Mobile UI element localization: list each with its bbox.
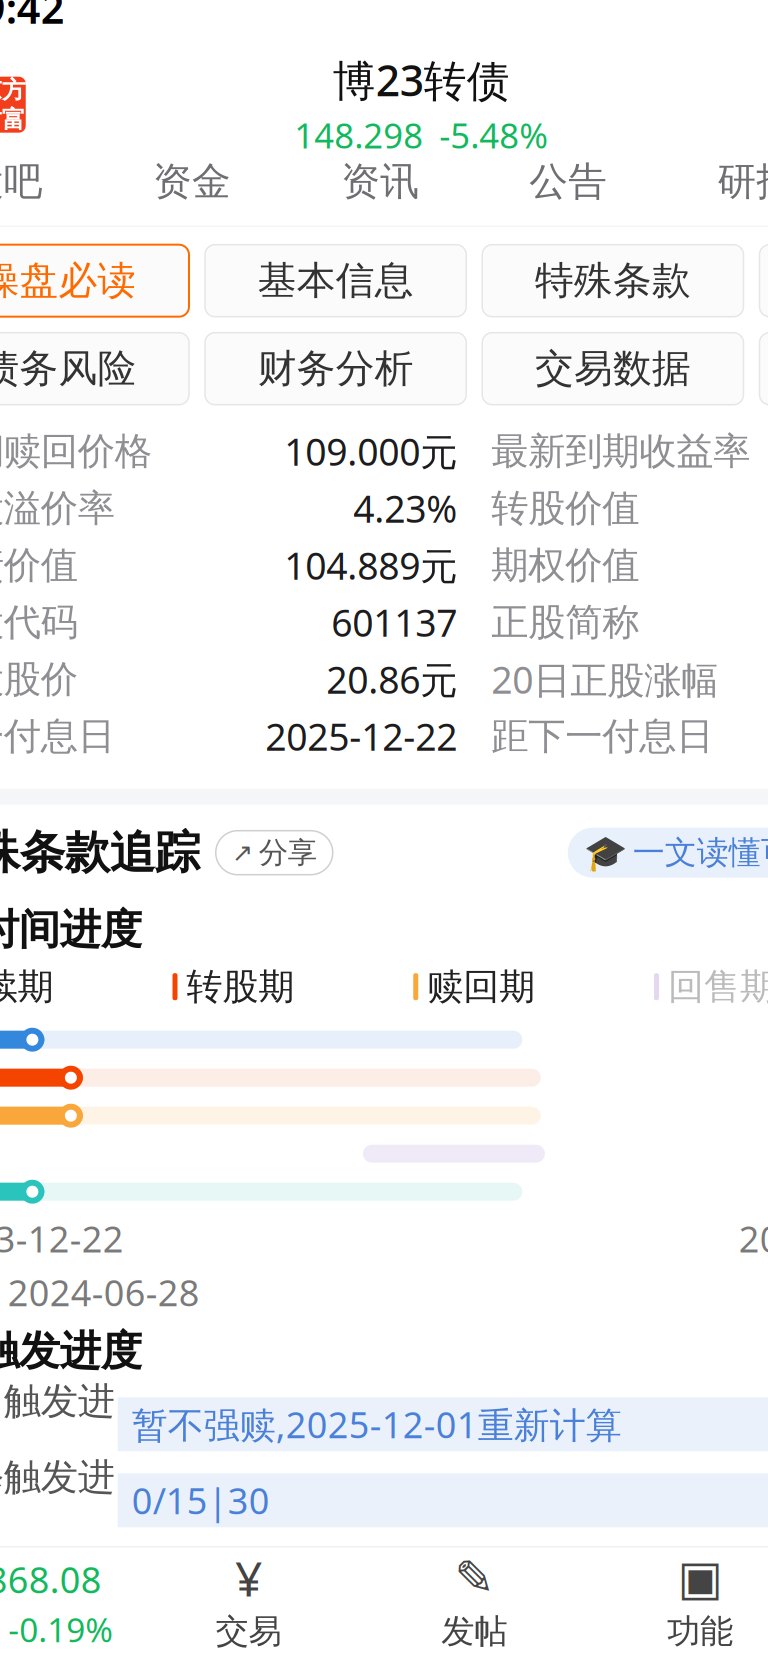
staticText: 暂不强赎,2025-12-01重新计算 <box>132 1400 622 1448</box>
button[interactable]: 关联品种 <box>759 333 768 405</box>
staticText: 601137 <box>331 597 457 647</box>
button[interactable]: 特殊条款 <box>482 245 743 317</box>
staticText: 20.86元 <box>326 654 457 704</box>
staticText: ▣ <box>677 1551 722 1605</box>
staticText: 2023-12-22 <box>0 1215 124 1262</box>
button[interactable]: ¥ <box>135 1547 361 1659</box>
staticText: 时间进度 <box>0 904 142 955</box>
staticText: 09:42 <box>0 0 65 35</box>
staticText: 正股简称 <box>491 599 639 645</box>
staticText: 公告 <box>529 158 607 205</box>
button[interactable]: 交易数据 <box>482 333 743 405</box>
staticText: 正股股价 <box>0 656 78 702</box>
staticText: 20日正股涨幅 <box>491 654 718 704</box>
button[interactable]: ✎ <box>361 1547 587 1659</box>
staticText: 股吧 <box>0 158 43 205</box>
staticText: 财务分析 <box>258 345 414 392</box>
button[interactable]: 股吧 <box>0 154 98 226</box>
staticText: 回售期 <box>668 965 768 1009</box>
staticText: 下修触发进度 <box>0 1454 115 1546</box>
staticText: 一文读懂可转债特殊条款 <box>633 833 768 872</box>
staticText: 交易 <box>215 1611 281 1652</box>
button[interactable]: 基本信息 <box>205 245 466 317</box>
staticText: 期权价值 <box>491 542 639 588</box>
button[interactable]: ▣ <box>587 1547 768 1659</box>
button[interactable]: 操盘必读 <box>0 245 189 317</box>
staticText: 财富 <box>0 105 26 134</box>
staticText: 下一付息日 <box>0 713 115 759</box>
staticText: 2027-12-22 <box>739 1215 768 1262</box>
staticText: -0.19% <box>8 1607 113 1651</box>
staticText: 功能 <box>667 1611 733 1652</box>
staticText: 特殊条款 <box>535 257 691 304</box>
staticText: 操盘必读 <box>0 257 136 304</box>
staticText: 特殊条款追踪 <box>0 825 200 881</box>
button[interactable]: 公告 <box>474 154 662 226</box>
staticText: 148.298 <box>294 112 423 158</box>
staticText: ↗ <box>232 838 253 867</box>
staticText: 转股期 <box>186 965 294 1009</box>
staticText: 到期赎回价格 <box>0 428 152 474</box>
staticText: 3868.08 <box>0 1555 102 1603</box>
button[interactable]: 套利机会 <box>759 245 768 317</box>
button[interactable]: 财务分析 <box>205 333 466 405</box>
staticText: 资金 <box>153 158 231 205</box>
staticText: 交易数据 <box>535 345 691 392</box>
staticText: 研报 <box>717 158 768 205</box>
button[interactable]: 资讯 <box>286 154 474 226</box>
button[interactable]: ↗ <box>216 831 333 875</box>
staticText: 纯债价值 <box>0 542 78 588</box>
staticText: 最新到期收益率 <box>491 428 750 474</box>
staticText: 东方 <box>0 75 26 105</box>
staticText: 博23转债 <box>333 51 510 108</box>
staticText: 存续期 <box>0 965 54 1009</box>
staticText: 4.23% <box>353 483 457 533</box>
staticText: -5.48% <box>439 112 548 158</box>
staticText: 基本信息 <box>258 257 414 304</box>
staticText: 赎回触发进度 <box>0 1378 115 1470</box>
staticText: 发帖 <box>441 1611 507 1652</box>
button[interactable]: 研报 <box>662 154 768 226</box>
staticText: 分享 <box>259 835 317 871</box>
staticText: 触发进度 <box>0 1326 142 1377</box>
staticText: 赎回期 <box>427 965 535 1009</box>
staticText: 109.000元 <box>284 426 457 476</box>
staticText: 转股价值 <box>491 485 639 531</box>
staticText: 104.889元 <box>284 540 457 590</box>
staticText: 🎓 <box>584 833 627 872</box>
staticText: 资讯 <box>341 158 419 205</box>
staticText: 2025-12-22 <box>265 711 457 761</box>
button[interactable]: 东方财富 <box>0 77 26 133</box>
staticText: 债务风险 <box>0 345 136 392</box>
staticText: 距下一付息日 <box>491 713 713 759</box>
button[interactable]: 资金 <box>98 154 286 226</box>
button[interactable]: 债务风险 <box>0 333 189 405</box>
staticText: 2024-06-28 <box>8 1268 200 1316</box>
staticText: ¥ <box>235 1546 262 1610</box>
staticText: 转股溢价率 <box>0 485 115 531</box>
staticText: ✎ <box>454 1551 494 1605</box>
staticText: 正股代码 <box>0 599 78 645</box>
button[interactable]: ▲ <box>0 1547 135 1659</box>
button[interactable]: 🎓 <box>568 828 768 878</box>
staticText: 0/15|30 <box>132 1476 270 1524</box>
